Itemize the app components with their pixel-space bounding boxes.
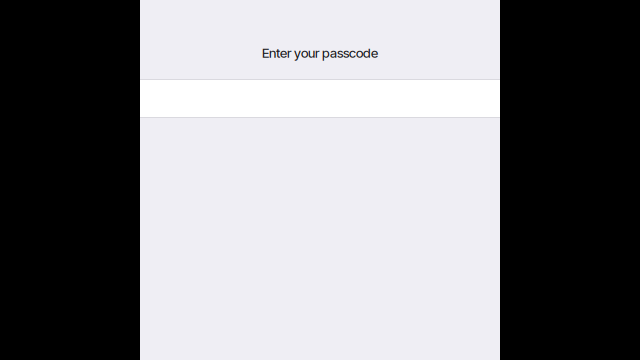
staticText: Enter your passcode xyxy=(262,45,378,61)
